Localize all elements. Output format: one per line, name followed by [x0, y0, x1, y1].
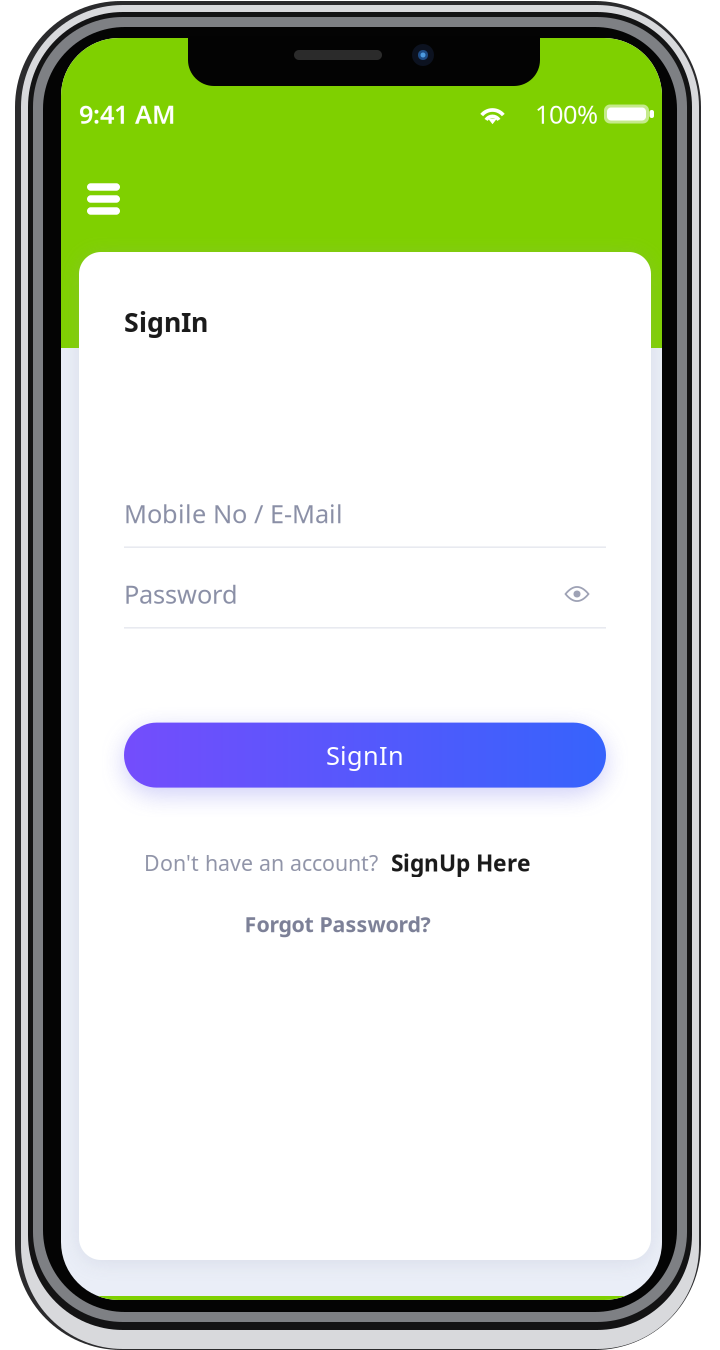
staticText: Password — [124, 577, 238, 611]
button[interactable]: Menu — [79, 176, 128, 222]
staticText: Don't have an account? — [144, 848, 378, 877]
staticText: SignUp Here — [391, 848, 531, 878]
staticText: Forgot Password? — [244, 910, 430, 938]
button[interactable]: SignIn — [124, 723, 606, 788]
staticText: SignIn — [124, 304, 208, 339]
staticText: SignIn — [326, 738, 404, 772]
staticText: 9:41 AM — [79, 97, 176, 131]
staticText: Mobile No / E-Mail — [124, 497, 343, 530]
button[interactable]: Forgot Password? — [244, 910, 430, 938]
button[interactable]: Show password — [559, 576, 595, 612]
staticText: 100% — [535, 97, 598, 131]
button[interactable]: SignUp Here — [391, 848, 531, 878]
